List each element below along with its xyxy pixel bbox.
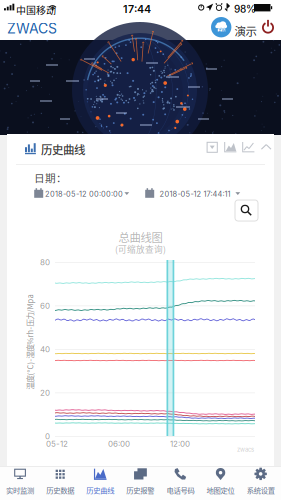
staticText: ZW xyxy=(218,28,225,33)
staticText: 06:00 xyxy=(108,439,130,449)
button[interactable]: 历史数据 xyxy=(40,466,80,500)
staticText: zwacs xyxy=(237,446,254,453)
staticText: 80 xyxy=(40,257,50,267)
staticText: 12:00 xyxy=(170,439,190,449)
button[interactable]: Select xyxy=(206,141,226,157)
staticText: 历史报警 xyxy=(126,485,154,495)
staticText: 总曲线图 xyxy=(118,229,162,245)
button[interactable]: 实时监测 xyxy=(0,466,40,500)
staticText: (可缩放查询) xyxy=(115,243,166,255)
button[interactable]: 历史曲线 xyxy=(80,466,120,500)
staticText: 40 xyxy=(40,344,50,354)
button[interactable]: Power off xyxy=(260,19,276,35)
staticText: 20 xyxy=(40,388,50,398)
staticText: 98% xyxy=(234,3,256,15)
staticText: 实时监测 xyxy=(6,485,34,495)
staticText: 地图定位 xyxy=(207,485,235,495)
button[interactable]: Line chart xyxy=(242,141,262,157)
staticText: 系统设置 xyxy=(247,485,275,495)
staticText: 17:44 xyxy=(123,3,151,15)
button[interactable]: 2018-05-12 00:00:00 xyxy=(34,187,132,200)
button[interactable]: 2018-05-12 17:44:11 xyxy=(145,187,243,200)
staticText: 0 xyxy=(45,431,50,441)
button[interactable]: 历史报警 xyxy=(120,466,160,500)
staticText: 历史数据 xyxy=(46,485,74,495)
staticText: 电话号码 xyxy=(166,485,194,495)
button[interactable]: Area chart xyxy=(224,141,244,157)
staticText: 2018-05-12 17:44:11 xyxy=(159,190,230,199)
button[interactable]: ZW xyxy=(211,17,253,38)
button[interactable]: Search xyxy=(235,200,258,221)
staticText: 05-12 xyxy=(46,439,68,449)
button[interactable]: 地图定位 xyxy=(200,466,241,500)
staticText: 历史曲线 xyxy=(41,141,85,158)
staticText: ZWACS xyxy=(7,20,57,37)
button[interactable]: Collapse xyxy=(260,141,278,157)
staticText: 历史曲线 xyxy=(86,485,114,495)
staticText: 60 xyxy=(40,301,50,311)
staticText: 演示 xyxy=(234,22,256,39)
button[interactable]: 系统设置 xyxy=(241,466,281,500)
staticText: 2018-05-12 00:00:00 xyxy=(45,190,123,199)
staticText: 中国移动 xyxy=(16,3,56,17)
button[interactable]: 电话号码 xyxy=(160,466,200,500)
staticText: 日期： xyxy=(34,170,67,185)
staticText: 温度(°C)-湿度%rh-压力/Mpa xyxy=(0,337,77,347)
